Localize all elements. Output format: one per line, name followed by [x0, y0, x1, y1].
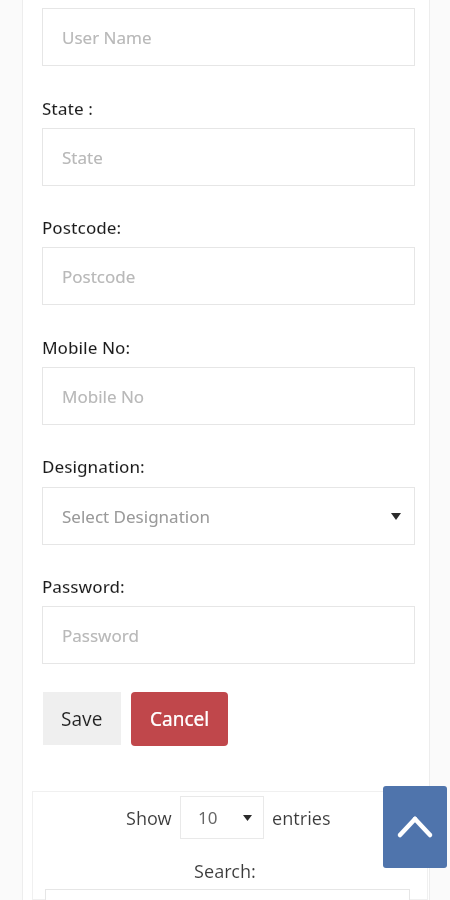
staticText: Save — [61, 706, 103, 732]
staticText: entries — [272, 806, 331, 831]
staticText: Cancel — [150, 706, 210, 732]
button[interactable]: Cancel — [131, 692, 228, 746]
button[interactable]: Mobile No — [42, 367, 415, 425]
staticText: State : — [42, 97, 93, 120]
button[interactable]: Password — [42, 606, 415, 664]
button[interactable]: Postcode — [42, 247, 415, 305]
staticText: Mobile No: — [42, 336, 131, 359]
button[interactable]: State — [42, 128, 415, 186]
button[interactable]: User Name — [42, 8, 415, 66]
staticText: Password — [62, 624, 139, 647]
staticText: 10 — [198, 806, 218, 829]
staticText: Show — [126, 806, 172, 831]
staticText: Designation: — [42, 455, 145, 478]
staticText: Password: — [42, 575, 125, 598]
staticText: Postcode: — [42, 216, 122, 239]
button[interactable]: Scroll to top — [383, 786, 447, 868]
staticText: State — [62, 146, 103, 169]
staticText: Search: — [0, 859, 450, 884]
button[interactable]: 10 — [180, 796, 264, 839]
button[interactable] — [45, 889, 410, 900]
button[interactable]: Save — [43, 692, 121, 745]
staticText: Postcode — [62, 265, 136, 288]
button[interactable]: Select Designation — [42, 487, 415, 545]
staticText: Select Designation — [62, 505, 210, 528]
staticText: Mobile No — [62, 385, 145, 408]
staticText: User Name — [62, 26, 152, 49]
